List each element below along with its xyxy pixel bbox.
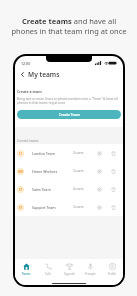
staticText: London Team xyxy=(32,151,55,156)
button[interactable]: Team settings xyxy=(95,203,103,211)
button[interactable]: Delete team xyxy=(109,203,117,211)
button[interactable]: Team settings xyxy=(95,149,103,157)
button[interactable]: Delete team xyxy=(109,185,117,193)
staticText: 3 users xyxy=(73,151,84,155)
staticText: ST xyxy=(19,206,23,210)
button[interactable]: HW xyxy=(15,162,123,180)
button[interactable]: Create Team xyxy=(17,110,121,119)
staticText: Prompts xyxy=(85,272,96,276)
staticText: My teams xyxy=(28,70,60,79)
staticText: 3 users xyxy=(73,169,84,173)
button[interactable]: Team settings xyxy=(95,167,103,175)
button[interactable]: Prompts xyxy=(80,263,100,276)
button[interactable]: Calls xyxy=(38,263,58,276)
staticText: Home Workers xyxy=(32,169,58,174)
button[interactable]: Back xyxy=(18,70,27,79)
button[interactable]: Upgrade xyxy=(59,263,79,276)
button[interactable]: Delete team xyxy=(109,149,117,157)
button[interactable]: Delete team xyxy=(109,167,117,175)
staticText: Bring two or more Users or phone numbers… xyxy=(17,97,118,105)
staticText: Create Team xyxy=(59,112,80,117)
staticText: Profile xyxy=(108,272,117,276)
staticText: ST xyxy=(19,188,23,192)
staticText: Support Team xyxy=(32,205,56,210)
staticText: Rooms xyxy=(22,272,31,276)
staticText: Calls xyxy=(45,272,51,276)
staticText: LT xyxy=(19,152,23,156)
staticText: HW xyxy=(18,170,23,174)
button[interactable]: ST xyxy=(15,198,123,216)
button[interactable]: LT xyxy=(15,144,123,162)
button[interactable]: Rooms xyxy=(16,263,36,276)
staticText: Current teams xyxy=(17,139,39,143)
staticText: 4 users xyxy=(73,187,84,191)
staticText: Sales Team xyxy=(32,187,51,192)
button[interactable]: Team settings xyxy=(95,185,103,193)
staticText: 12:00 xyxy=(21,61,31,66)
button[interactable]: ST xyxy=(15,180,123,198)
staticText: 3 users xyxy=(73,205,84,209)
staticText: Upgrade xyxy=(64,272,75,276)
button[interactable]: Profile xyxy=(102,263,122,276)
staticText: Create teams and have all phones in that… xyxy=(11,16,127,36)
staticText: Create a team xyxy=(17,89,42,94)
